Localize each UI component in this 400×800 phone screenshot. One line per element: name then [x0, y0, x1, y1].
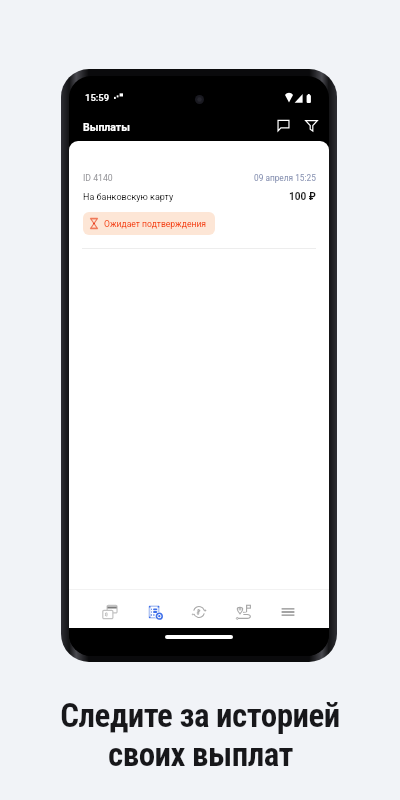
- staticText: ID 4140: [83, 173, 113, 183]
- button[interactable]: Cashback: [181, 590, 217, 628]
- staticText: Выплаты: [83, 121, 130, 133]
- button[interactable]: ID 4140: [69, 141, 329, 248]
- staticText: Следите за историей: [60, 696, 340, 735]
- staticText: своих выплат: [108, 735, 293, 774]
- staticText: 100 ₽: [289, 191, 316, 203]
- button[interactable]: Chat: [272, 114, 294, 136]
- button[interactable]: Routes: [226, 590, 262, 628]
- button[interactable]: Cards: [92, 590, 128, 628]
- staticText: 15:59: [85, 92, 110, 103]
- button[interactable]: Filter: [300, 114, 322, 136]
- button[interactable]: Menu: [270, 590, 306, 628]
- button[interactable]: Payouts: [137, 590, 173, 628]
- staticText: 09 апреля 15:25: [254, 173, 316, 183]
- staticText: Ожидает подтверждения: [104, 219, 207, 229]
- staticText: На банковскую карту: [83, 192, 174, 203]
- button[interactable]: Ожидает подтверждения: [83, 212, 215, 235]
